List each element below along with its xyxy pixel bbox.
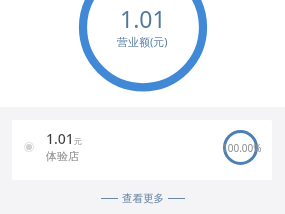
staticText: 1.01 — [46, 129, 74, 148]
staticText: 查看更多 — [122, 192, 164, 205]
staticText: 元 — [74, 136, 82, 146]
staticText: 营业额(元) — [117, 34, 168, 49]
button[interactable]: 门店 — [12, 120, 272, 180]
staticText: 1.01 — [120, 3, 166, 34]
staticText: 100.00% — [222, 141, 257, 155]
other: 门店 — [24, 142, 34, 152]
button[interactable]: 查看更多 — [0, 188, 285, 208]
staticText: 体验店 — [46, 149, 79, 163]
